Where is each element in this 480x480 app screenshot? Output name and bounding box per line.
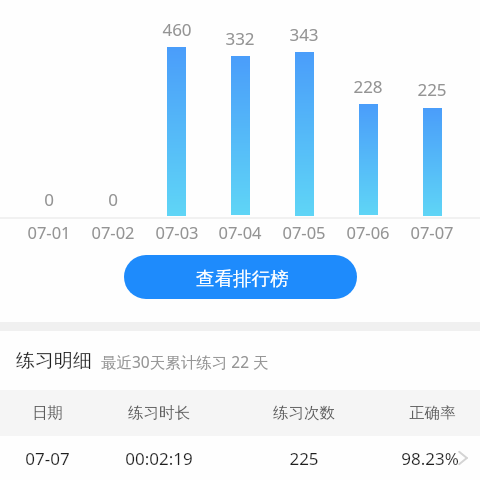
other: 查看详情 — [457, 451, 469, 465]
staticText: 460 — [162, 18, 192, 41]
staticText: 练习时长 — [128, 403, 190, 423]
staticText: 07-06 — [346, 221, 390, 243]
staticText: 07-05 — [282, 221, 326, 243]
staticText: 正确率 — [409, 403, 456, 423]
staticText: 0 — [108, 188, 118, 211]
staticText: 07-07 — [410, 221, 454, 243]
staticText: 07-04 — [218, 221, 262, 243]
staticText: 07-02 — [91, 221, 135, 243]
staticText: 228 — [353, 75, 383, 98]
staticText: 日期 — [32, 403, 63, 423]
staticText: 00:02:19 — [125, 447, 193, 470]
staticText: 最近30天累计练习 22 天 — [101, 351, 269, 372]
staticText: 225 — [417, 78, 447, 101]
button[interactable]: 查看排行榜 — [124, 255, 357, 299]
staticText: 07-07 — [25, 447, 70, 470]
staticText: 0 — [44, 188, 54, 211]
staticText: 332 — [225, 27, 255, 50]
staticText: 343 — [289, 23, 319, 46]
staticText: 07-03 — [155, 221, 199, 243]
staticText: 225 — [289, 447, 319, 470]
button[interactable]: 07-07 — [0, 434, 480, 480]
staticText: 练习次数 — [273, 403, 335, 423]
staticText: 07-01 — [27, 221, 71, 243]
staticText: 查看排行榜 — [196, 267, 289, 290]
staticText: 练习明细 — [16, 349, 92, 373]
staticText: 98.23% — [401, 447, 459, 470]
